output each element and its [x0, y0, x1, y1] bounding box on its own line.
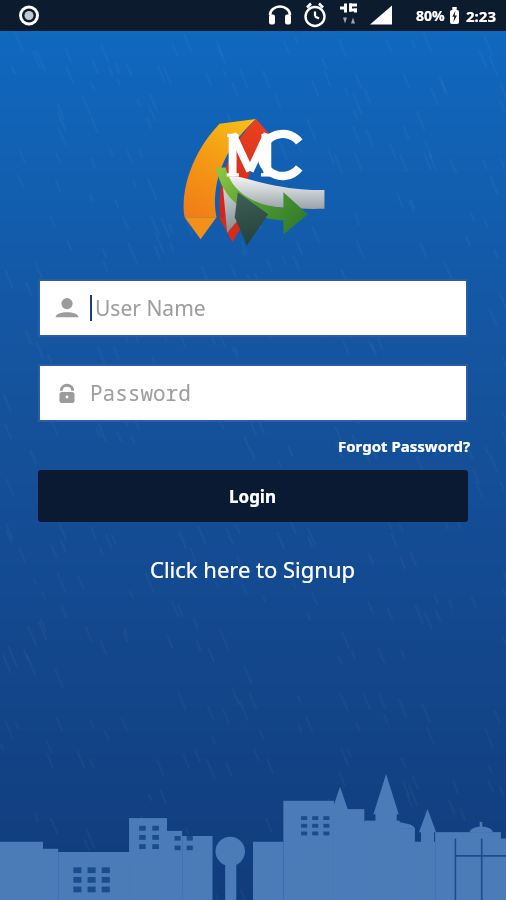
staticText: 80%: [416, 6, 445, 25]
staticText: User Name: [95, 294, 206, 323]
button[interactable]: Forgot Password?: [335, 433, 474, 459]
button[interactable]: Password: [40, 366, 466, 420]
staticText: Forgot Password?: [338, 436, 471, 456]
button[interactable]: User Name: [40, 281, 466, 335]
staticText: Password: [90, 379, 191, 408]
staticText: Click here to Signup: [150, 554, 356, 584]
button[interactable]: Login: [38, 470, 468, 522]
staticText: 2:23: [466, 6, 496, 26]
staticText: Login: [229, 485, 277, 508]
button[interactable]: Click here to Signup: [140, 549, 366, 589]
